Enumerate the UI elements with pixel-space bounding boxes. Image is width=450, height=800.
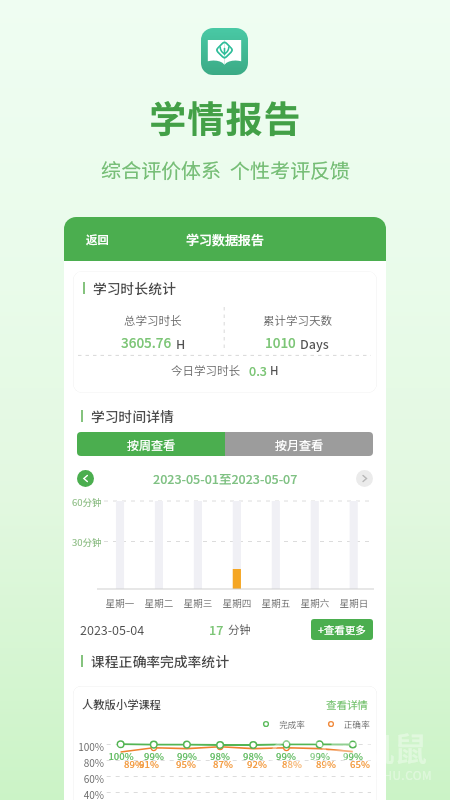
button[interactable]: Next week (356, 470, 373, 487)
staticText: 2023-05-01至2023-05-07 (153, 469, 298, 487)
staticText: 正确率 (344, 718, 370, 730)
staticText: 100% (106, 749, 136, 763)
staticText: 手机鼠 (328, 723, 427, 771)
staticText: 98% (205, 749, 235, 763)
staticText: 按周查看 (127, 436, 176, 453)
staticText: 星期一 (103, 596, 137, 610)
staticText: 87% (208, 757, 238, 771)
other: Study report app icon (201, 28, 248, 75)
staticText: 92% (242, 757, 272, 771)
staticText: 学情报告 (149, 90, 302, 144)
staticText: 91% (134, 757, 164, 771)
staticText: 返回 (86, 231, 109, 248)
staticText: 98% (238, 749, 268, 763)
staticText: 65% (345, 757, 375, 771)
staticText: 星期四 (220, 596, 254, 610)
staticText: 人教版小学课程 (82, 696, 162, 712)
staticText: 99% (305, 749, 335, 763)
button[interactable]: 返回 (74, 217, 121, 261)
staticText: 89% (119, 757, 149, 771)
button[interactable]: 按月查看 (225, 432, 373, 456)
staticText: 88% (277, 757, 307, 771)
staticText: 星期日 (337, 596, 371, 610)
staticText: 星期二 (142, 596, 176, 610)
staticText: 综合评价体系 个性考评反馈 (101, 155, 350, 184)
staticText: SHOUJISHU.COM (331, 766, 433, 783)
staticText: 学习数据报告 (186, 230, 265, 249)
staticText: 17 (209, 620, 224, 638)
staticText: 课程正确率完成率统计 (91, 651, 229, 671)
staticText: 30分钟 (72, 535, 102, 549)
staticText: 按月查看 (275, 436, 324, 453)
staticText: 60% (74, 771, 104, 785)
button[interactable]: Previous week (77, 470, 94, 487)
staticText: 80% (74, 755, 104, 769)
staticText: +查看更多 (318, 622, 366, 637)
staticText: 60分钟 (72, 495, 102, 509)
button[interactable]: 查看详情 (326, 697, 368, 712)
button[interactable]: 按周查看 (77, 432, 225, 456)
staticText: 1010 (265, 332, 296, 352)
staticText: 星期五 (259, 596, 293, 610)
staticText: 0.3 (249, 361, 267, 379)
staticText: 99% (139, 749, 169, 763)
staticText: H (270, 362, 279, 379)
staticText: 99% (338, 749, 368, 763)
staticText: 分钟 (228, 621, 251, 638)
staticText: 89% (311, 757, 341, 771)
staticText: 星期六 (298, 596, 332, 610)
staticText: 40% (74, 787, 104, 800)
staticText: 学习时长统计 (93, 278, 176, 298)
staticText: 95% (171, 757, 201, 771)
staticText: 星期三 (181, 596, 215, 610)
staticText: 2023-05-04 (80, 620, 145, 638)
staticText: 完成率 (279, 718, 305, 730)
staticText: H (176, 334, 186, 352)
staticText: 学习时间详情 (91, 406, 174, 426)
staticText: 100% (74, 739, 104, 753)
staticText: Days (300, 334, 329, 352)
staticText: 累计学习天数 (263, 312, 332, 329)
staticText: 99% (172, 749, 202, 763)
staticText: 总学习时长 (124, 312, 182, 329)
staticText: 今日学习时长 (171, 362, 240, 379)
staticText: 99% (271, 749, 301, 763)
button[interactable]: +查看更多 (311, 619, 373, 640)
staticText: 3605.76 (121, 332, 172, 352)
staticText: 查看详情 (326, 697, 368, 712)
